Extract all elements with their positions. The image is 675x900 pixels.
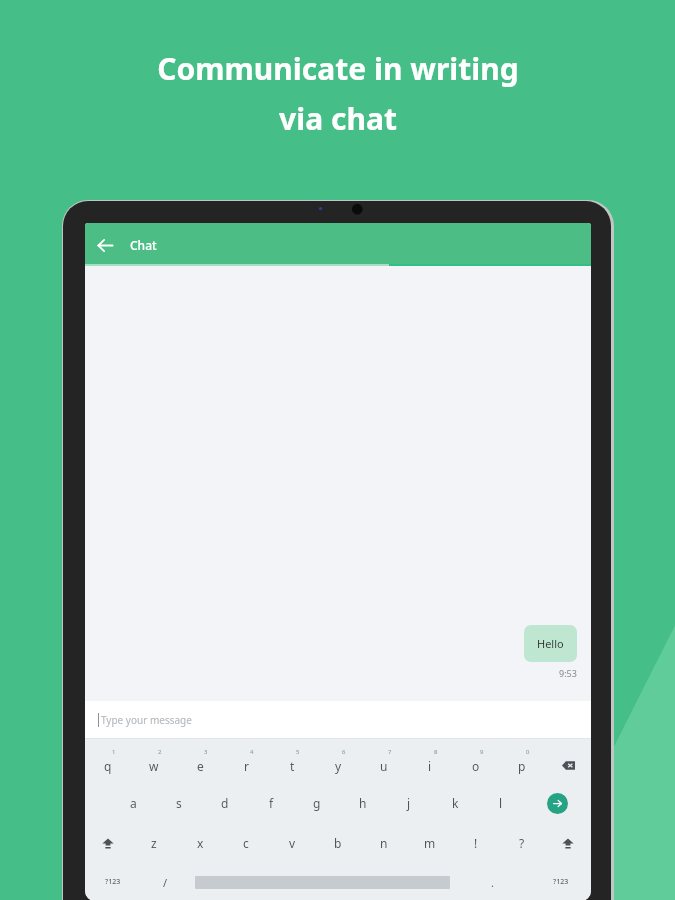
button[interactable]: Space [191, 863, 454, 900]
staticText: p [518, 758, 526, 774]
button[interactable]: 3 [177, 743, 223, 783]
button[interactable]: b [315, 823, 361, 863]
staticText: 9:53 [559, 667, 577, 679]
button[interactable]: 5 [269, 743, 315, 783]
staticText: z [151, 835, 157, 851]
staticText: b [334, 835, 342, 851]
button[interactable]: 2 [131, 743, 177, 783]
button[interactable]: h [340, 783, 386, 823]
button[interactable]: 8 [407, 743, 453, 783]
staticText: / [163, 875, 168, 890]
staticText: Type your message [101, 713, 192, 727]
button[interactable]: Shift [85, 823, 131, 863]
staticText: j [407, 795, 411, 811]
staticText: r [244, 758, 249, 774]
staticText: ? [519, 835, 525, 851]
button[interactable]: ? [499, 823, 545, 863]
staticText: q [104, 758, 112, 774]
button[interactable]: ?123 [85, 863, 140, 900]
button[interactable]: c [223, 823, 269, 863]
staticText: e [197, 758, 204, 774]
button[interactable]: m [407, 823, 453, 863]
staticText: l [499, 795, 503, 811]
staticText: 7 [388, 748, 392, 756]
staticText: a [130, 795, 137, 811]
button[interactable]: Send [524, 783, 591, 823]
button[interactable]: 4 [223, 743, 269, 783]
button[interactable]: s [156, 783, 202, 823]
staticText: 8 [434, 748, 438, 756]
button[interactable]: n [361, 823, 407, 863]
staticText: ! [474, 835, 478, 851]
button[interactable]: l [478, 783, 524, 823]
button[interactable]: k [432, 783, 478, 823]
staticText: y [335, 758, 342, 774]
staticText: u [380, 758, 388, 774]
staticText: ?123 [553, 877, 569, 887]
staticText: 1 [112, 748, 116, 756]
button[interactable]: 0 [499, 743, 545, 783]
button[interactable]: a [110, 783, 156, 823]
button[interactable]: ! [453, 823, 499, 863]
staticText: 9 [480, 748, 484, 756]
staticText: o [472, 758, 480, 774]
staticText: c [243, 835, 249, 851]
staticText: h [359, 795, 367, 811]
staticText: s [176, 795, 182, 811]
button[interactable]: ?123 [530, 863, 591, 900]
button[interactable]: g [294, 783, 340, 823]
staticText: v [289, 835, 296, 851]
staticText: m [424, 835, 436, 851]
button[interactable]: Type your message [85, 701, 591, 739]
button[interactable]: 6 [315, 743, 361, 783]
staticText: 0 [526, 748, 530, 756]
button[interactable]: Hello [524, 625, 577, 662]
button[interactable]: j [386, 783, 432, 823]
staticText: Hello [537, 636, 564, 651]
button[interactable]: 1 [85, 743, 131, 783]
button[interactable]: Back [85, 225, 125, 265]
button[interactable]: v [269, 823, 315, 863]
staticText: i [428, 758, 432, 774]
staticText: Communicate in writing [157, 48, 519, 89]
button[interactable]: 7 [361, 743, 407, 783]
staticText: ?123 [105, 877, 121, 887]
staticText: f [269, 795, 274, 811]
button[interactable]: d [202, 783, 248, 823]
staticText: 3 [204, 748, 208, 756]
staticText: via chat [279, 98, 397, 139]
staticText: t [290, 758, 295, 774]
button[interactable]: 9 [453, 743, 499, 783]
button[interactable]: z [131, 823, 177, 863]
staticText: w [149, 758, 159, 774]
staticText: k [452, 795, 459, 811]
button[interactable]: / [140, 863, 191, 900]
staticText: Chat [130, 237, 157, 253]
button[interactable]: Shift [545, 823, 591, 863]
staticText: 5 [296, 748, 300, 756]
staticText: 4 [250, 748, 254, 756]
staticText: 2 [158, 748, 162, 756]
staticText: . [491, 875, 494, 890]
staticText: d [221, 795, 229, 811]
staticText: x [197, 835, 204, 851]
button[interactable]: x [177, 823, 223, 863]
staticText: g [313, 795, 321, 811]
staticText: 6 [342, 748, 346, 756]
button[interactable]: Backspace [545, 743, 591, 783]
button[interactable]: f [248, 783, 294, 823]
staticText: n [380, 835, 388, 851]
